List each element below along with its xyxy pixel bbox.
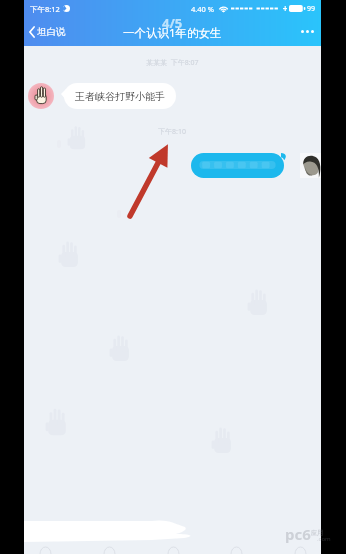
staticText: 下午8:10 bbox=[158, 127, 186, 137]
staticText: 4/5 bbox=[162, 14, 183, 32]
staticText: .com bbox=[317, 535, 331, 543]
staticText: 坦白说 bbox=[37, 26, 66, 38]
staticText: 王者峡谷打野小能手 bbox=[75, 90, 165, 103]
staticText: 下午8:12 bbox=[30, 4, 60, 14]
button[interactable]: Tool 1 bbox=[38, 546, 52, 554]
staticText: pc6 bbox=[285, 524, 311, 544]
button[interactable]: Tool 4 bbox=[229, 546, 243, 554]
staticText: 99 bbox=[307, 4, 316, 14]
button[interactable]: Tool 5 bbox=[293, 546, 307, 554]
button[interactable]: Tool 3 bbox=[166, 546, 180, 554]
button[interactable]: Avatar bbox=[28, 83, 54, 109]
button[interactable]: More options bbox=[294, 22, 321, 41]
staticText: 某某某 下午8:07 bbox=[146, 58, 199, 68]
button[interactable]: 王者峡谷打野小能手 bbox=[64, 83, 176, 109]
button[interactable]: 坦白说 bbox=[24, 22, 72, 42]
button[interactable]: Tool 2 bbox=[102, 546, 116, 554]
staticText: 4.40 % bbox=[191, 4, 215, 14]
staticText: 应用 bbox=[311, 529, 323, 537]
button[interactable]: Avatar bbox=[300, 153, 321, 178]
staticText: 一个认识1年的女生 bbox=[123, 25, 222, 41]
button[interactable] bbox=[191, 153, 284, 178]
